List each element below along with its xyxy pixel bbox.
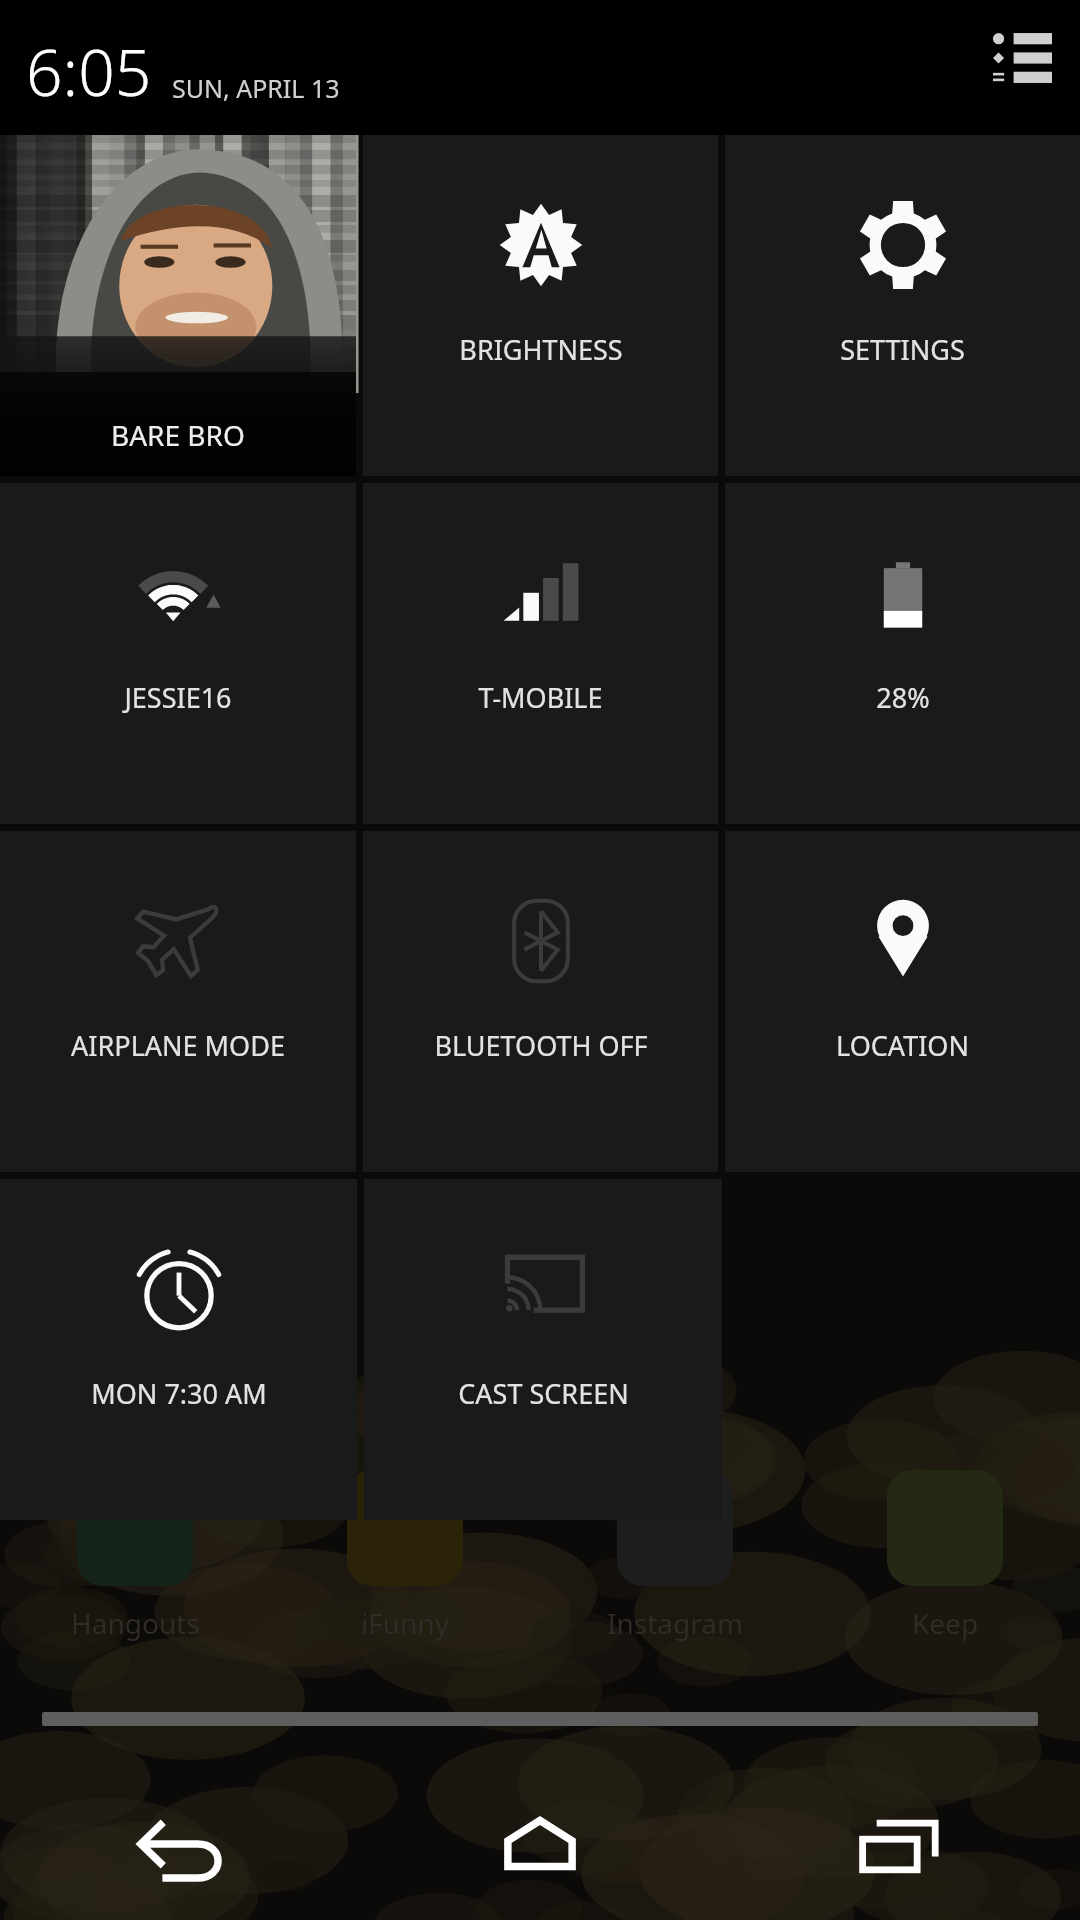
button[interactable]: Back xyxy=(0,1772,360,1920)
staticText: 6:05 xyxy=(26,28,152,115)
button[interactable]: BRIGHTNESS xyxy=(363,135,718,476)
staticText: BARE BRO xyxy=(111,416,245,454)
button[interactable]: Notifications xyxy=(980,20,1060,96)
button[interactable]: CAST SCREEN xyxy=(364,1179,722,1520)
button[interactable]: T-MOBILE xyxy=(363,483,718,824)
staticText: T-MOBILE xyxy=(478,679,603,716)
staticText: iFunny xyxy=(361,1604,449,1642)
staticText: Instagram xyxy=(607,1604,744,1642)
staticText: MON 7:30 AM xyxy=(91,1375,267,1412)
button[interactable]: SETTINGS xyxy=(725,135,1080,476)
staticText: Hangouts xyxy=(71,1604,200,1642)
staticText: BRIGHTNESS xyxy=(459,331,623,368)
staticText: SETTINGS xyxy=(840,331,965,368)
button[interactable]: 28% xyxy=(725,483,1080,824)
button[interactable]: BARE BRO xyxy=(0,135,356,476)
staticText: BLUETOOTH OFF xyxy=(434,1027,648,1064)
staticText: SUN, APRIL 13 xyxy=(172,71,340,105)
staticText: CAST SCREEN xyxy=(458,1375,629,1412)
button[interactable]: LOCATION xyxy=(725,831,1080,1172)
button[interactable]: JESSIE16 xyxy=(0,483,356,824)
button[interactable]: MON 7:30 AM xyxy=(0,1179,357,1520)
staticText: LOCATION xyxy=(836,1027,969,1064)
button[interactable]: Recent apps xyxy=(720,1772,1080,1920)
staticText: 28% xyxy=(876,679,930,716)
staticText: AIRPLANE MODE xyxy=(71,1027,285,1064)
button[interactable]: Home xyxy=(360,1772,720,1920)
button[interactable]: AIRPLANE MODE xyxy=(0,831,356,1172)
staticText: JESSIE16 xyxy=(124,679,232,716)
button[interactable]: BLUETOOTH OFF xyxy=(363,831,718,1172)
staticText: Keep xyxy=(912,1604,979,1642)
